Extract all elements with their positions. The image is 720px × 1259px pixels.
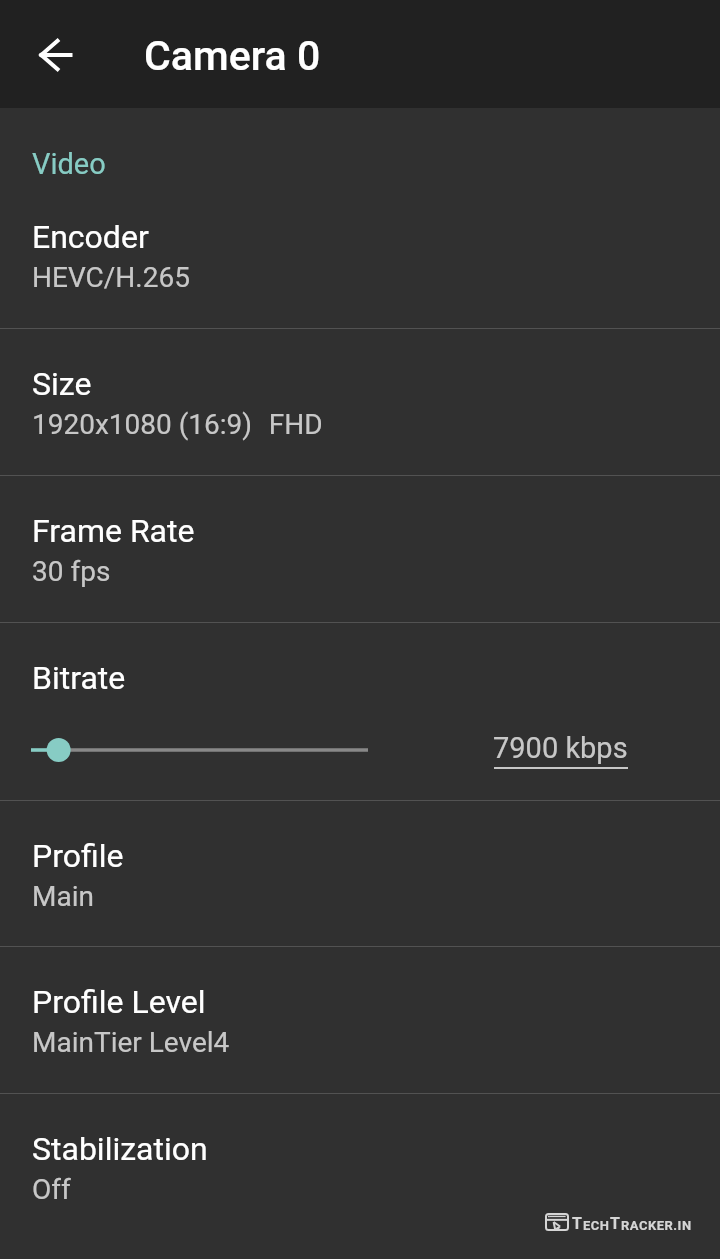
staticText: Off xyxy=(32,1173,71,1206)
staticText: Main xyxy=(32,880,94,913)
staticText: RACKER.IN xyxy=(621,1218,692,1233)
staticText: Profile Level xyxy=(32,983,206,1021)
staticText: 7900 kbps xyxy=(493,731,628,765)
staticText: ECH xyxy=(583,1218,610,1233)
staticText: MainTier Level4 xyxy=(32,1026,230,1059)
button[interactable]: Profile xyxy=(0,801,720,946)
button[interactable]: Back xyxy=(25,24,87,86)
staticText: 1920x1080 (16:9) FHD xyxy=(32,408,323,441)
button[interactable]: Profile Level xyxy=(0,947,720,1093)
staticText: Profile xyxy=(32,837,124,875)
staticText: Size xyxy=(32,365,92,403)
button[interactable]: Encoder xyxy=(0,182,720,328)
other: TechTracker.IN watermark xyxy=(545,1214,692,1233)
staticText: Encoder xyxy=(32,218,149,256)
staticText: T xyxy=(610,1214,621,1233)
staticText: Stabilization xyxy=(32,1130,208,1168)
staticText: Camera 0 xyxy=(144,32,321,80)
staticText: Frame Rate xyxy=(32,512,195,550)
button[interactable]: Size xyxy=(0,329,720,475)
button[interactable]: Bitrate value xyxy=(493,731,628,769)
staticText: Video xyxy=(32,147,106,181)
button[interactable]: Frame Rate xyxy=(0,476,720,622)
staticText: HEVC/H.265 xyxy=(32,261,190,294)
button[interactable]: Bitrate slider xyxy=(12,726,388,774)
staticText: 30 fps xyxy=(32,555,111,588)
staticText: Bitrate xyxy=(32,659,126,697)
button[interactable]: Stabilization xyxy=(0,1094,720,1240)
staticText: T xyxy=(572,1214,583,1233)
